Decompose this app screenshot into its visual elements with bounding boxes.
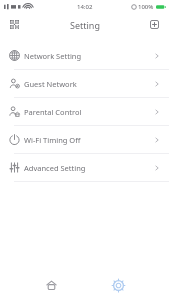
staticText: Advanced Setting <box>24 163 86 173</box>
staticText: 14:02 <box>77 3 93 11</box>
button[interactable]: Parental Control <box>0 98 169 125</box>
button[interactable]: Settings <box>103 270 133 300</box>
button[interactable]: Advanced Setting <box>0 154 169 181</box>
staticText: Parental Control <box>24 107 82 117</box>
button[interactable]: Home <box>36 270 66 300</box>
staticText: Setting <box>70 19 100 31</box>
button[interactable]: Scan QR code <box>6 16 23 33</box>
staticText: 100% <box>138 3 154 11</box>
button[interactable]: Network Setting <box>0 42 169 69</box>
button[interactable]: Guest Network <box>0 70 169 97</box>
button[interactable]: Wi-Fi Timing Off <box>0 126 169 153</box>
staticText: Wi-Fi Timing Off <box>24 135 81 145</box>
staticText: Guest Network <box>24 79 77 89</box>
staticText: Network Setting <box>24 51 82 61</box>
button[interactable]: Add device <box>146 16 163 33</box>
